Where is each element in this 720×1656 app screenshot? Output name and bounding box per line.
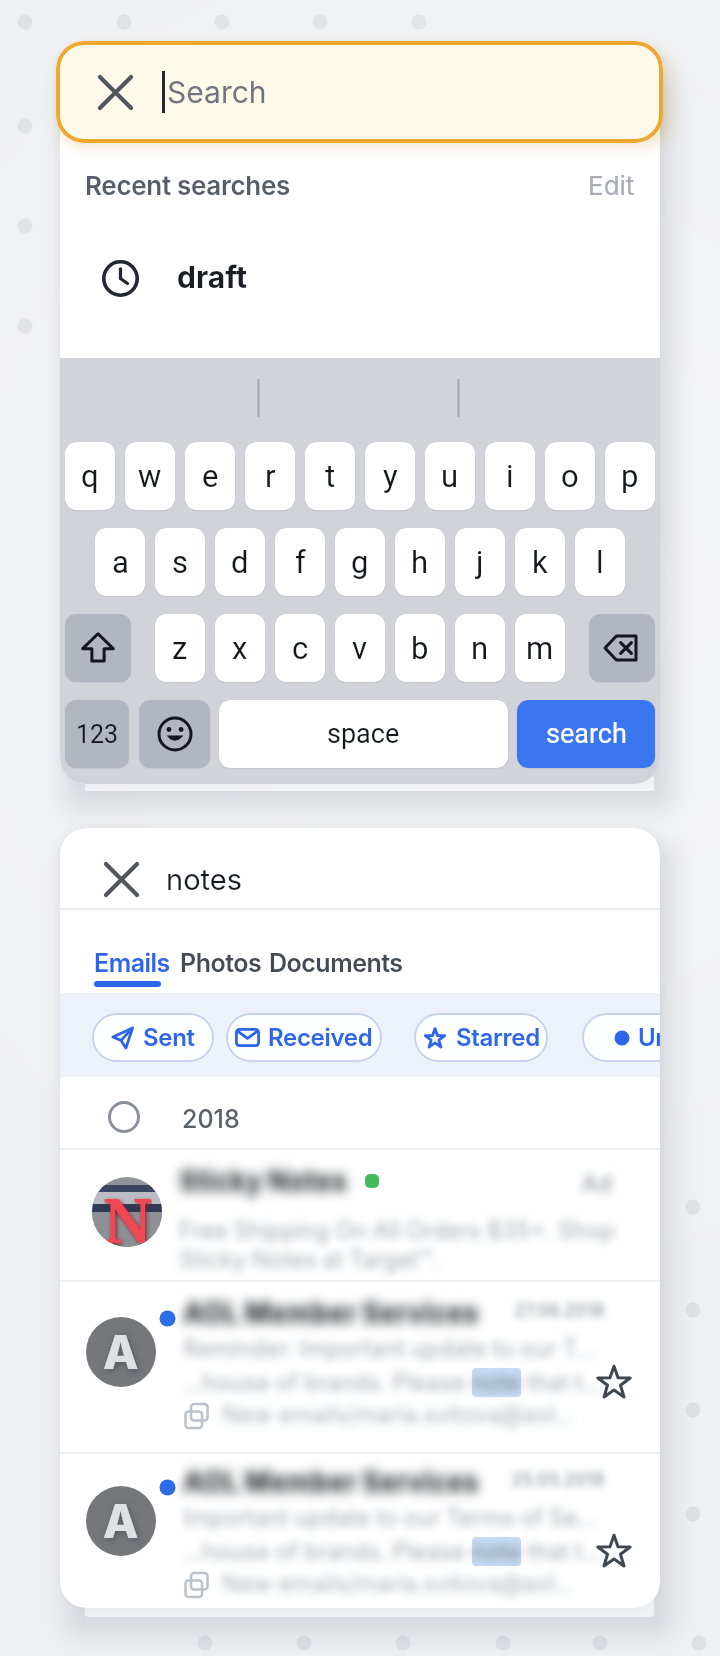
staticText: g [351, 544, 369, 580]
staticText: Sticky Notes [179, 1164, 347, 1198]
staticText: o [561, 458, 579, 494]
staticText: ...house of brands. Please [183, 1537, 472, 1566]
button[interactable] [594, 1362, 634, 1402]
button[interactable]: i [485, 442, 535, 510]
staticText: h [411, 544, 429, 580]
staticText: u [441, 458, 459, 494]
staticText: space [327, 718, 400, 750]
staticText: 2018 [182, 1104, 240, 1134]
staticText: that t... [521, 1537, 602, 1566]
button[interactable]: o [545, 442, 595, 510]
button[interactable]: m [515, 614, 565, 682]
button[interactable]: l [575, 528, 625, 596]
button[interactable]: search [517, 700, 655, 768]
button[interactable]: f [275, 528, 325, 596]
button[interactable]: d [215, 528, 265, 596]
staticText: New emails/maria.svitova@aol... [222, 1569, 575, 1598]
button[interactable]: Edit [588, 170, 635, 201]
button[interactable]: t [305, 442, 355, 510]
button[interactable]: j [455, 528, 505, 596]
staticText: r [265, 458, 276, 494]
button[interactable]: p [605, 442, 655, 510]
button[interactable]: Sent [92, 1013, 214, 1062]
button[interactable]: Documents [269, 948, 403, 978]
button[interactable]: g [335, 528, 385, 596]
staticText: b [411, 630, 429, 666]
staticText: j [476, 544, 484, 580]
button[interactable]: x [215, 614, 265, 682]
button[interactable]: Emails [94, 948, 170, 978]
staticText: i [506, 458, 514, 494]
button[interactable] [103, 861, 140, 898]
staticText: Important update to our Terms of Se... [183, 1503, 597, 1532]
staticText: notes [166, 862, 242, 897]
button[interactable]: Photos [180, 948, 262, 978]
staticText: Reminder: Important update to our T... [183, 1334, 596, 1363]
button[interactable]: a [95, 528, 145, 596]
button[interactable]: w [125, 442, 175, 510]
staticText: x [232, 630, 248, 666]
button[interactable]: k [515, 528, 565, 596]
staticText: f [295, 544, 306, 580]
button[interactable]: Starred [414, 1013, 548, 1062]
staticText: y [383, 458, 398, 494]
staticText: draft [177, 259, 247, 295]
button[interactable]: 123 [65, 700, 129, 768]
staticText: New emails/maria.svitova@aol... [222, 1400, 575, 1429]
button[interactable]: Unread [582, 1013, 660, 1062]
staticText: N [103, 1177, 152, 1247]
button[interactable]: b [395, 614, 445, 682]
staticText: d [231, 544, 249, 580]
button[interactable]: h [395, 528, 445, 596]
staticText: 27.06.2018 [514, 1300, 605, 1322]
staticText: Ad [581, 1169, 612, 1198]
button[interactable]: n [455, 614, 505, 682]
button[interactable]: e [185, 442, 235, 510]
staticText: w [138, 458, 162, 494]
staticText: l [596, 544, 604, 580]
button[interactable] [139, 700, 210, 768]
button[interactable]: u [425, 442, 475, 510]
button[interactable] [65, 614, 131, 682]
staticText: AOL Member Services [183, 1465, 479, 1499]
button[interactable]: Received [226, 1013, 382, 1062]
staticText: Starred [456, 1023, 540, 1052]
staticText: A [103, 1324, 139, 1380]
button[interactable]: Search [56, 41, 663, 143]
staticText: q [81, 458, 99, 494]
staticText: Sticky Notes at Target™. [179, 1245, 439, 1274]
staticText: t [325, 458, 336, 494]
button[interactable]: c [275, 614, 325, 682]
staticText: ...house of brands. Please [183, 1368, 472, 1397]
button[interactable]: draft [102, 258, 502, 295]
staticText: 25.05.2018 [511, 1469, 605, 1491]
staticText: z [172, 630, 188, 666]
staticText: c [292, 630, 309, 666]
staticText: m [526, 630, 554, 666]
staticText: A [103, 1493, 139, 1549]
staticText: Search [167, 74, 267, 110]
button[interactable] [589, 614, 655, 682]
button[interactable]: y [365, 442, 415, 510]
staticText: note [472, 1537, 521, 1566]
button[interactable] [594, 1531, 634, 1571]
staticText: Free Shipping On All Orders $35+. Shop [179, 1216, 615, 1245]
staticText: p [621, 458, 639, 494]
staticText: Received [268, 1023, 373, 1052]
button[interactable]: z [155, 614, 205, 682]
button[interactable]: r [245, 442, 295, 510]
staticText: 123 [76, 720, 119, 749]
staticText: k [532, 544, 548, 580]
staticText: v [352, 630, 368, 666]
staticText: e [202, 458, 219, 494]
button[interactable]: v [335, 614, 385, 682]
staticText: search [546, 718, 627, 750]
button[interactable]: space [219, 700, 508, 768]
staticText: a [112, 544, 129, 580]
button[interactable]: s [155, 528, 205, 596]
staticText: s [172, 544, 188, 580]
button[interactable]: q [65, 442, 115, 510]
staticText: Unread [638, 1023, 660, 1052]
staticText: n [471, 630, 489, 666]
staticText: Sent [143, 1023, 195, 1052]
